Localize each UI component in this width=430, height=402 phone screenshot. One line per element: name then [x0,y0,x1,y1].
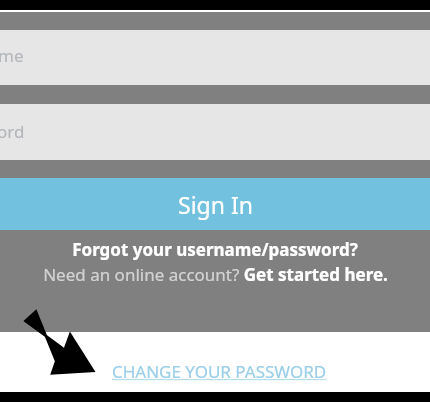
other: Arrow pointing to change your password l… [24,310,94,374]
button[interactable]: Need an online account? Get started here… [0,263,430,286]
staticText: ord [0,120,25,143]
button[interactable]: Forgot your username/password? [0,238,430,261]
button[interactable]: Sign In [0,178,430,230]
staticText: me [0,44,24,67]
staticText: CHANGE YOUR PASSWORD [112,360,327,383]
staticText: Forgot your username/password? [72,238,358,261]
staticText: Sign In [178,189,253,220]
button[interactable]: CHANGE YOUR PASSWORD [112,360,327,383]
staticText: Need an online account? Get started here… [43,263,388,286]
